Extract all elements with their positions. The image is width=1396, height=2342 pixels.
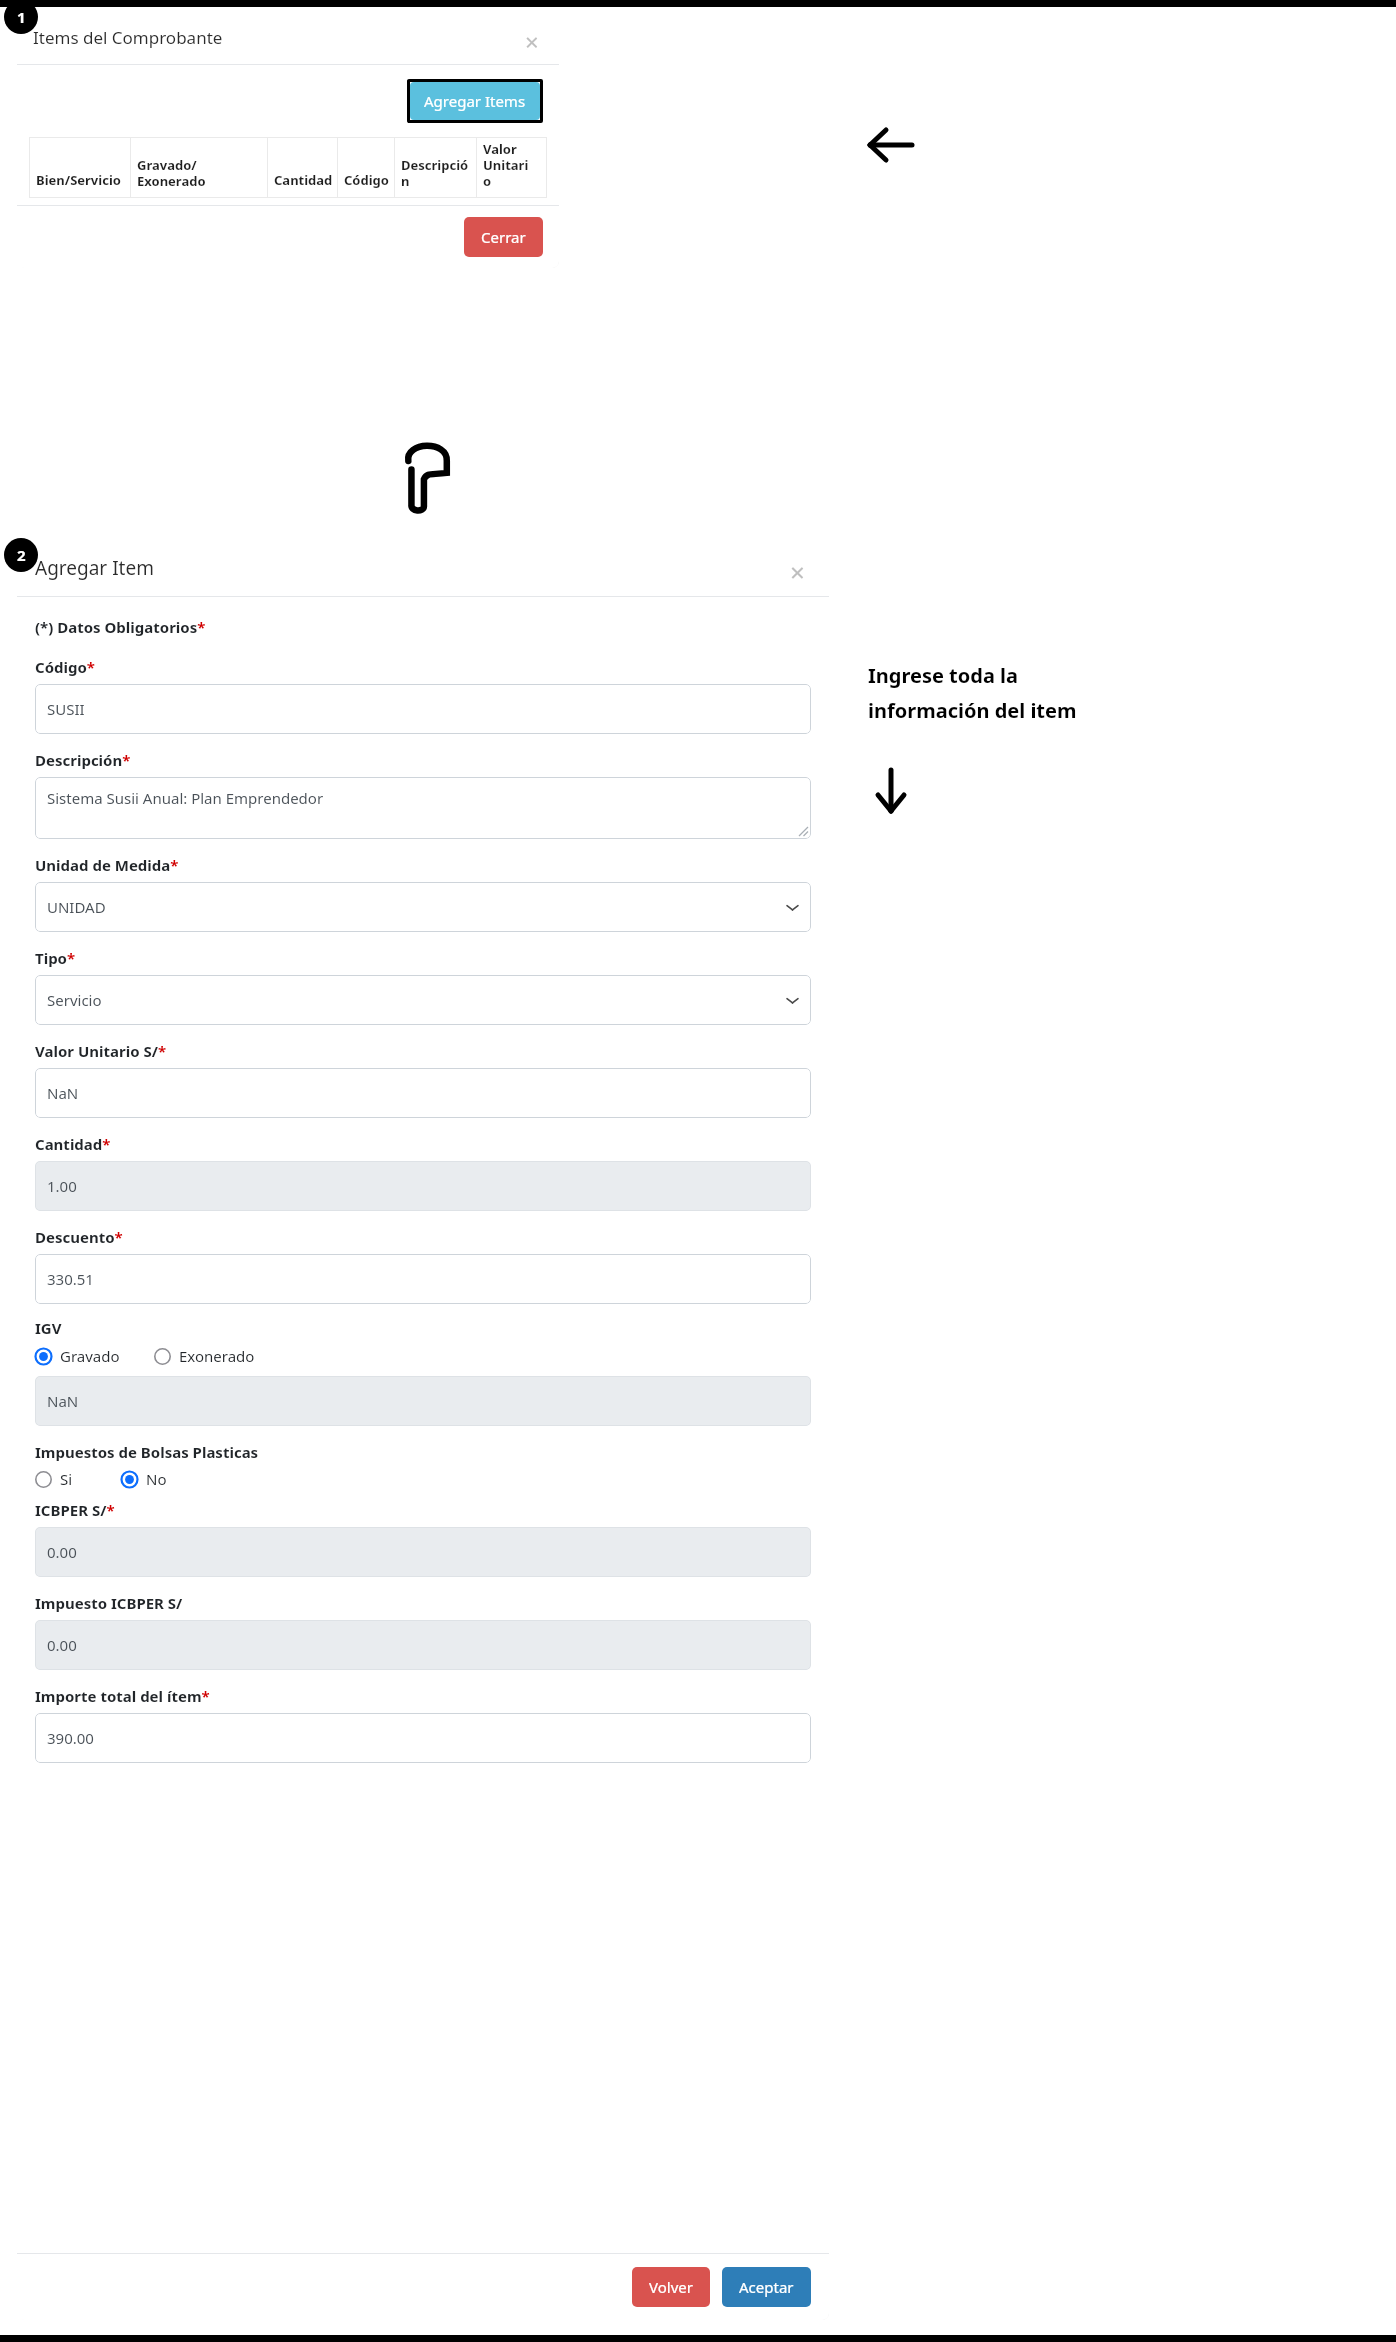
staticText: × xyxy=(525,25,539,51)
staticText: Código xyxy=(344,171,389,189)
staticText: Valor Unitario S/* xyxy=(35,1041,167,1061)
button[interactable]: 1.00 xyxy=(35,1161,811,1211)
staticText: Impuesto ICBPER S/ xyxy=(35,1593,183,1613)
button[interactable]: Agregar Items xyxy=(410,82,540,120)
staticText: No xyxy=(146,1469,167,1489)
staticText: 1 xyxy=(17,7,26,27)
staticText: 0.00 xyxy=(47,1542,77,1562)
staticText: Impuestos de Bolsas Plasticas xyxy=(35,1442,259,1462)
staticText: Items del Comprobante xyxy=(33,26,223,49)
staticText: IGV xyxy=(35,1318,62,1338)
staticText: Si xyxy=(60,1469,73,1489)
staticText: Agregar Item xyxy=(35,555,154,581)
staticText: Tipo* xyxy=(35,948,76,968)
button[interactable]: 390.00 xyxy=(35,1713,811,1763)
staticText: Agregar Items xyxy=(424,91,526,111)
staticText: (*) Datos Obligatorios* xyxy=(35,617,206,637)
staticText: SUSII xyxy=(47,699,85,719)
staticText: 0.00 xyxy=(47,1635,77,1655)
button[interactable]: Cerrar xyxy=(519,25,545,51)
staticText: Gravado/Exonerado xyxy=(137,156,263,189)
button[interactable]: No xyxy=(121,1467,167,1491)
button[interactable]: 330.51 xyxy=(35,1254,811,1304)
button[interactable]: Gravado xyxy=(35,1344,120,1368)
button[interactable]: UNIDAD xyxy=(35,882,811,932)
button[interactable]: Si xyxy=(35,1467,73,1491)
staticText: Ingrese toda la xyxy=(868,662,1019,689)
button[interactable]: Cerrar xyxy=(464,217,543,257)
button[interactable]: Volver xyxy=(632,2267,710,2307)
staticText: Descripción* xyxy=(35,750,131,770)
button[interactable]: NaN xyxy=(35,1376,811,1426)
staticText: NaN xyxy=(47,1391,79,1411)
staticText: NaN xyxy=(47,1083,79,1103)
staticText: 390.00 xyxy=(47,1728,94,1748)
button[interactable]: Aceptar xyxy=(722,2267,811,2307)
staticText: 330.51 xyxy=(47,1269,94,1289)
button[interactable]: Exonerado xyxy=(154,1344,255,1368)
staticText: Valor Unitario xyxy=(483,140,534,189)
staticText: Cerrar xyxy=(481,227,526,247)
staticText: Cantidad* xyxy=(35,1134,111,1154)
staticText: 2 xyxy=(17,545,26,565)
staticText: 1.00 xyxy=(47,1176,77,1196)
button[interactable]: 0.00 xyxy=(35,1527,811,1577)
button[interactable]: SUSII xyxy=(35,684,811,734)
staticText: UNIDAD xyxy=(47,897,106,917)
button[interactable]: Servicio xyxy=(35,975,811,1025)
staticText: × xyxy=(790,554,805,582)
staticText: Aceptar xyxy=(739,2277,794,2297)
staticText: Gravado xyxy=(60,1346,120,1366)
staticText: Descuento* xyxy=(35,1227,123,1247)
staticText: Servicio xyxy=(47,990,102,1010)
staticText: información del item xyxy=(868,697,1077,724)
button[interactable]: Sistema Susii Anual: Plan Emprendedor xyxy=(35,777,811,839)
staticText: Importe total del ítem* xyxy=(35,1686,210,1706)
staticText: Bien/Servicio xyxy=(36,171,121,189)
staticText: Sistema Susii Anual: Plan Emprendedor xyxy=(47,788,324,808)
staticText: Unidad de Medida* xyxy=(35,855,179,875)
button[interactable]: Cerrar xyxy=(783,554,811,582)
staticText: ICBPER S/* xyxy=(35,1500,115,1520)
staticText: Volver xyxy=(649,2277,693,2297)
staticText: Cantidad xyxy=(274,171,333,189)
button[interactable]: NaN xyxy=(35,1068,811,1118)
button[interactable]: 0.00 xyxy=(35,1620,811,1670)
staticText: Código* xyxy=(35,657,95,677)
staticText: Exonerado xyxy=(179,1346,255,1366)
staticText: Descripción xyxy=(401,156,472,189)
